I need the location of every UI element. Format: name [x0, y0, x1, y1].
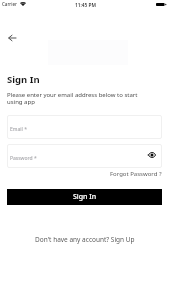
- staticText: Email *: [10, 126, 27, 133]
- button[interactable]: Don't have any account? Sign Up: [29, 232, 141, 247]
- staticText: Sign In: [73, 192, 97, 202]
- staticText: Sign In: [7, 73, 40, 86]
- staticText: Please enter your email address below to…: [7, 91, 139, 106]
- staticText: Don't have any account? Sign Up: [35, 235, 135, 244]
- button[interactable]: Forgot Password ?: [106, 168, 166, 180]
- button[interactable]: Sign In: [7, 189, 162, 205]
- button[interactable]: Email *: [7, 115, 162, 139]
- button[interactable]: Password *: [7, 144, 162, 168]
- staticText: Carrier: [2, 1, 17, 7]
- staticText: Forgot Password ?: [110, 170, 162, 178]
- staticText: Password *: [10, 155, 37, 162]
- button[interactable]: Show password: [143, 146, 161, 164]
- button[interactable]: Back: [1, 27, 23, 49]
- staticText: 11:45 PM: [75, 2, 96, 9]
